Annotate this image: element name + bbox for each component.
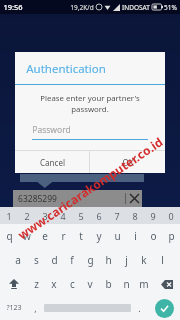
staticText: 51% — [164, 3, 177, 12]
button[interactable]: 8 — [126, 207, 144, 224]
staticText: . — [138, 302, 141, 314]
button[interactable]: s — [27, 248, 45, 272]
staticText: 8 — [132, 210, 138, 222]
button[interactable]: e — [36, 224, 54, 248]
staticText: 19,2K/d — [70, 3, 94, 12]
button[interactable]: v — [81, 272, 99, 296]
staticText: , — [34, 302, 37, 314]
button[interactable]: OK — [90, 151, 165, 173]
staticText: e — [42, 229, 48, 243]
staticText: j — [125, 253, 128, 267]
staticText: Authentication — [26, 61, 106, 77]
button[interactable]: 9 — [144, 207, 162, 224]
staticText: 3 — [42, 210, 48, 222]
button[interactable]: Backspace — [153, 272, 180, 296]
staticText: 4 — [60, 210, 66, 222]
staticText: www.caricarakomputer.co.id — [14, 133, 166, 243]
button[interactable]: 5 — [72, 207, 90, 224]
staticText: Password — [32, 124, 71, 136]
staticText: x — [51, 277, 57, 291]
button[interactable]: i — [126, 224, 144, 248]
staticText: i — [134, 229, 137, 243]
staticText: 2 — [24, 210, 30, 222]
staticText: p — [168, 229, 175, 243]
staticText: h — [105, 253, 112, 267]
button[interactable]: m — [135, 272, 153, 296]
button[interactable]: 1 — [0, 207, 18, 224]
staticText: u — [114, 229, 121, 243]
button[interactable]: b — [99, 272, 117, 296]
button[interactable]: , — [27, 296, 44, 320]
button[interactable]: 4 — [54, 207, 72, 224]
staticText: w — [23, 229, 31, 243]
button[interactable]: q — [0, 224, 18, 248]
staticText: Please enter your partner's password. — [26, 93, 154, 115]
button[interactable]: Cancel — [15, 151, 89, 173]
button[interactable]: z — [27, 272, 45, 296]
button[interactable]: 6 — [90, 207, 108, 224]
staticText: 0 — [168, 210, 174, 222]
staticText: o — [150, 229, 157, 243]
staticText: f — [70, 253, 74, 267]
button[interactable]: g — [81, 248, 99, 272]
staticText: 63285299 — [18, 193, 57, 205]
staticText: g — [87, 253, 94, 267]
button[interactable]: n — [117, 272, 135, 296]
button[interactable]: Clear — [126, 190, 142, 207]
staticText: r — [61, 229, 66, 243]
button[interactable]: ?123 — [0, 296, 27, 320]
staticText: q — [6, 229, 13, 243]
staticText: 9 — [150, 210, 156, 222]
button[interactable]: . — [131, 296, 148, 320]
staticText: y — [96, 229, 102, 243]
button[interactable]: 0 — [162, 207, 180, 224]
button[interactable]: 63285299 — [13, 190, 142, 207]
staticText: d — [51, 253, 58, 267]
staticText: 19:56 — [3, 2, 23, 12]
button[interactable]: Shift — [0, 272, 27, 296]
button[interactable]: r — [54, 224, 72, 248]
staticText: c — [70, 277, 75, 291]
staticText: l — [161, 253, 164, 267]
staticText: 1 — [6, 210, 12, 222]
button[interactable]: f — [63, 248, 81, 272]
staticText: n — [123, 277, 130, 291]
button[interactable]: Enter — [148, 296, 180, 320]
staticText: k — [141, 253, 147, 267]
staticText: s — [34, 253, 39, 267]
button[interactable]: c — [63, 272, 81, 296]
button[interactable]: p — [162, 224, 180, 248]
button[interactable]: l — [153, 248, 171, 272]
staticText: 7 — [114, 210, 120, 222]
button[interactable]: 2 — [18, 207, 36, 224]
staticText: INDOSAT — [122, 3, 150, 12]
staticText: OK — [122, 157, 134, 168]
staticText: 5 — [78, 210, 84, 222]
staticText: t — [79, 229, 83, 243]
button[interactable]: 7 — [108, 207, 126, 224]
button[interactable]: x — [45, 272, 63, 296]
button[interactable]: u — [108, 224, 126, 248]
button[interactable]: a — [9, 248, 27, 272]
staticText: Cancel — [40, 157, 65, 168]
button[interactable]: y — [90, 224, 108, 248]
button[interactable]: h — [99, 248, 117, 272]
staticText: b — [105, 277, 112, 291]
button[interactable]: d — [45, 248, 63, 272]
staticText: z — [34, 277, 39, 291]
staticText: 6 — [96, 210, 102, 222]
staticText: ?123 — [6, 303, 22, 313]
button[interactable]: k — [135, 248, 153, 272]
button[interactable]: j — [117, 248, 135, 272]
button[interactable]: t — [72, 224, 90, 248]
button[interactable]: 3 — [36, 207, 54, 224]
button[interactable]: o — [144, 224, 162, 248]
button[interactable]: w — [18, 224, 36, 248]
staticText: m — [139, 277, 149, 291]
staticText: v — [87, 277, 93, 291]
staticText: a — [15, 253, 21, 267]
